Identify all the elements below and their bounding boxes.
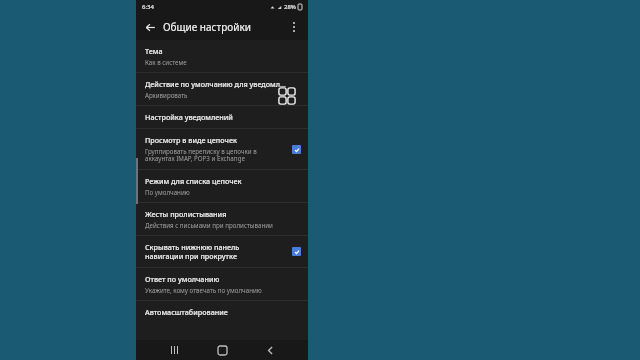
button[interactable]: Grid view — [275, 84, 299, 108]
button[interactable]: Тема — [136, 40, 308, 72]
staticText: Жесты пролистывания — [145, 209, 227, 219]
button[interactable]: Toggle — [292, 145, 301, 154]
staticText: Архивировать — [145, 91, 188, 99]
staticText: 6:34 — [142, 3, 154, 11]
staticText: Укажите, кому отвечать по умолчанию — [145, 286, 262, 294]
button[interactable]: Автомасштабирование — [136, 301, 308, 323]
staticText: Действие по умолчанию для уведомл… — [145, 79, 286, 89]
staticText: Настройка уведомлений — [145, 112, 233, 122]
button[interactable]: Скрывать нижнюю панель навигации при про… — [136, 236, 308, 267]
button[interactable]: Режим для списка цепочек — [136, 170, 308, 202]
button[interactable]: Home — [212, 340, 232, 360]
staticText: Просмотр в виде цепочек — [145, 135, 237, 145]
staticText: Как в системе — [145, 58, 187, 66]
button[interactable]: Back — [260, 340, 280, 360]
button[interactable]: Действие по умолчанию для уведомл… — [136, 73, 308, 105]
staticText: Общие настройки — [163, 20, 251, 34]
button[interactable]: Просмотр в виде цепочек — [136, 129, 308, 169]
staticText: Группировать переписку в цепочки в аккау… — [145, 147, 257, 163]
staticText: Скрывать нижнюю панель навигации при про… — [145, 242, 240, 261]
staticText: 28% — [284, 3, 296, 11]
staticText: Автомасштабирование — [145, 307, 228, 317]
button[interactable]: More options — [284, 17, 304, 37]
button[interactable]: Ответ по умолчанию — [136, 268, 308, 300]
staticText: Режим для списка цепочек — [145, 176, 242, 186]
button[interactable]: Toggle — [292, 247, 301, 256]
button[interactable]: Настройка уведомлений — [136, 106, 308, 128]
staticText: Ответ по умолчанию — [145, 274, 220, 284]
staticText: Тема — [145, 46, 163, 56]
button[interactable]: Жесты пролистывания — [136, 203, 308, 235]
staticText: Действия с письмами при пролистывании — [145, 221, 273, 229]
button[interactable]: Back — [140, 17, 160, 37]
staticText: По умолчанию — [145, 188, 190, 196]
button[interactable]: Recents — [164, 340, 184, 360]
